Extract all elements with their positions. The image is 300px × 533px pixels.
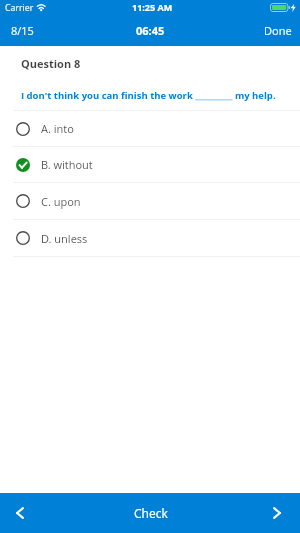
staticText: B. without [41,157,93,172]
staticText: 06:45 [136,23,165,38]
button[interactable]: Previous question [0,493,39,533]
staticText: 8/15 [11,23,34,38]
staticText: 11:25 AM [132,1,173,13]
button[interactable]: B. without [0,147,300,182]
staticText: D. unless [41,231,88,246]
button[interactable]: A. into [0,111,300,146]
staticText: I don't think you can finish the work my… [21,89,276,102]
button[interactable]: Done [264,20,292,46]
button[interactable]: 8/15 [11,20,34,46]
staticText: Carrier [5,2,34,14]
staticText: C. upon [41,194,81,209]
staticText: A. into [41,121,74,136]
staticText: Check [134,505,168,521]
staticText: Question 8 [21,56,81,71]
staticText: Done [264,23,292,38]
button[interactable]: C. upon [0,183,300,219]
button[interactable]: Check [39,493,254,533]
button[interactable]: Next question [254,493,300,533]
button[interactable]: D. unless [0,220,300,256]
